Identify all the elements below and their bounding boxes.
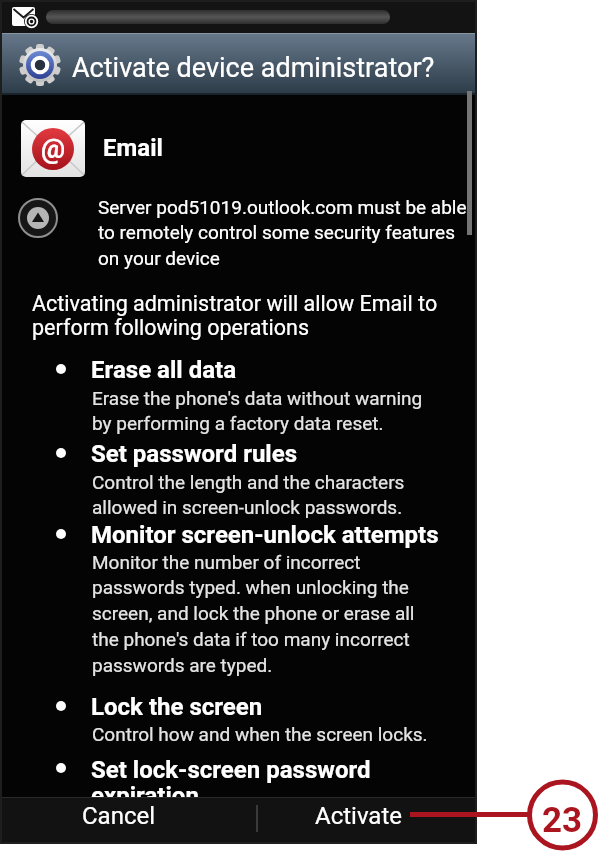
button[interactable] (2, 798, 256, 842)
staticText: Monitor the number of incorrect password… (92, 551, 415, 677)
staticText: Control how and when the screen locks. (92, 723, 428, 745)
staticText: Activate device administrator? (72, 52, 435, 84)
staticText: Server pod51019.outlook.com must be able… (98, 196, 467, 270)
staticText: Control the length and the characters al… (92, 471, 405, 519)
staticText: Erase all data (91, 356, 237, 384)
staticText: Activate (315, 802, 402, 830)
button[interactable] (256, 798, 475, 842)
staticText: Set lock-screen password expiration (91, 756, 371, 810)
staticText: Erase the phone's data without warning b… (92, 387, 423, 435)
staticText: Cancel (82, 802, 156, 830)
staticText: Lock the screen (91, 693, 263, 721)
staticText: Email (103, 134, 163, 162)
staticText: Monitor screen-unlock attempts (91, 521, 439, 549)
staticText: @ (41, 133, 66, 165)
staticText: Set password rules (91, 440, 298, 468)
staticText: 23 (542, 800, 583, 841)
button[interactable] (18, 198, 58, 238)
staticText: Activating administrator will allow Emai… (32, 291, 438, 341)
